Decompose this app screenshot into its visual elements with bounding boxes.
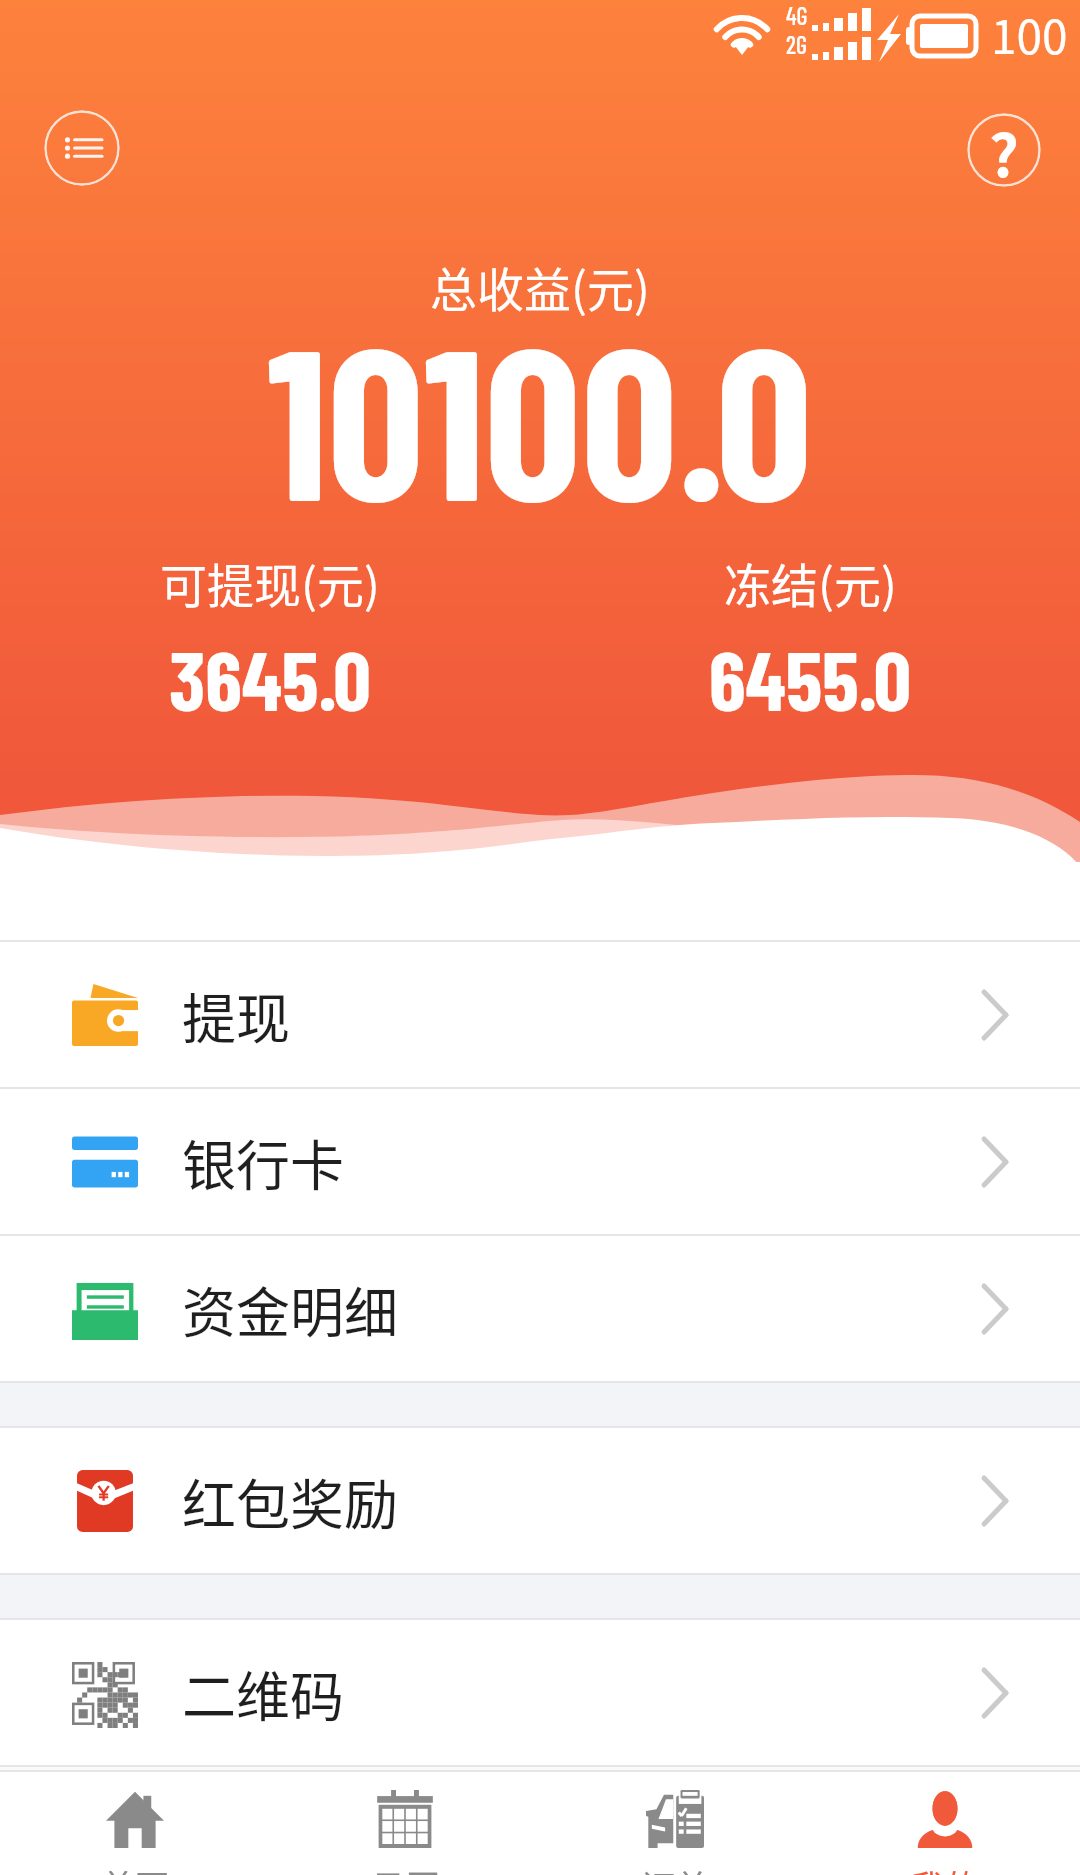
staticText: 日历 [371, 1861, 439, 1875]
staticText: 6455.0 [709, 628, 912, 728]
staticText: 我的 [911, 1861, 979, 1875]
staticText: 10100.0 [267, 288, 813, 544]
staticText: 银行卡 [182, 1123, 344, 1201]
staticText: 资金明细 [182, 1270, 398, 1348]
staticText: 提现 [182, 976, 290, 1054]
staticText: 二维码 [182, 1654, 344, 1732]
button[interactable]: 订单 [540, 1772, 810, 1875]
button[interactable]: 我的 [810, 1772, 1080, 1875]
staticText: 红包奖励 [182, 1462, 398, 1540]
button[interactable]: 提现 [0, 942, 1080, 1087]
staticText: 总收益(元) [430, 252, 650, 320]
staticText: 4G [786, 1, 808, 30]
staticText: 订单 [641, 1861, 709, 1875]
staticText: 首页 [101, 1861, 169, 1875]
button[interactable]: 银行卡 [0, 1089, 1080, 1234]
button[interactable]: 日历 [270, 1772, 540, 1875]
button[interactable]: 红包奖励 [0, 1428, 1080, 1573]
button[interactable]: Help [967, 113, 1041, 187]
staticText: ? [989, 113, 1019, 184]
staticText: 可提现(元) [160, 548, 380, 616]
staticText: 100 [991, 1, 1068, 68]
staticText: 冻结(元) [724, 548, 897, 616]
button[interactable]: Menu [44, 110, 120, 186]
button[interactable]: 首页 [0, 1772, 270, 1875]
button[interactable]: 资金明细 [0, 1236, 1080, 1381]
button[interactable]: 二维码 [0, 1620, 1080, 1765]
staticText: 3645.0 [169, 628, 371, 728]
staticText: 2G [786, 30, 807, 59]
